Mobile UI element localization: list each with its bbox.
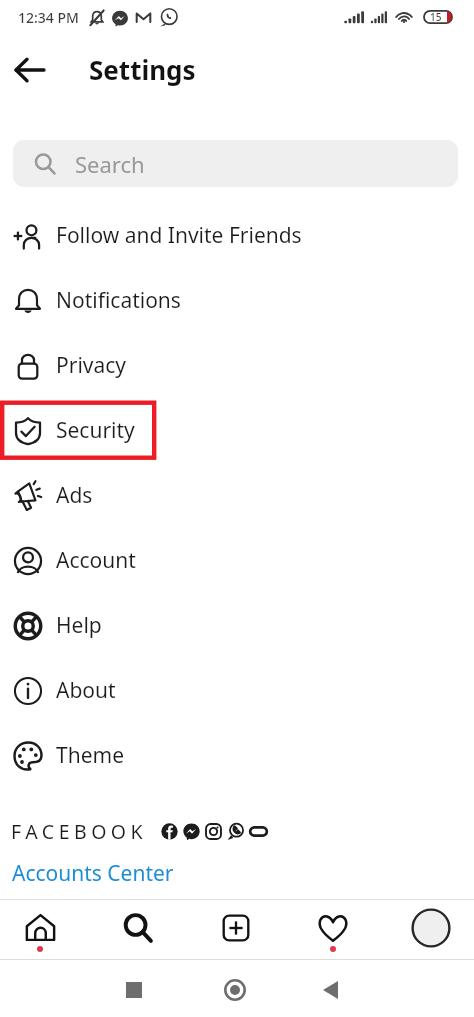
button[interactable]: Ads: [0, 463, 474, 528]
button[interactable]: Home: [203, 963, 267, 1017]
staticText: Theme: [56, 741, 124, 770]
button[interactable]: Account: [0, 528, 474, 593]
button[interactable]: Follow and Invite Friends: [0, 203, 474, 268]
staticText: Search: [75, 149, 145, 179]
button[interactable]: Help: [0, 593, 474, 658]
button[interactable]: Recents: [102, 963, 166, 1017]
button[interactable]: Back: [4, 44, 54, 94]
staticText: Help: [56, 611, 102, 640]
button[interactable]: Accounts Center: [0, 853, 474, 893]
staticText: Accounts Center: [12, 859, 174, 888]
staticText: Ads: [56, 481, 93, 510]
button[interactable]: Home: [11, 900, 69, 959]
button[interactable]: Notifications: [0, 268, 474, 333]
staticText: Follow and Invite Friends: [56, 221, 302, 250]
button[interactable]: Activity: [304, 900, 362, 959]
staticText: 15: [430, 10, 442, 24]
staticText: About: [56, 676, 116, 705]
staticText: Account: [56, 546, 136, 575]
button[interactable]: Privacy: [0, 333, 474, 398]
button[interactable]: Search: [109, 900, 167, 959]
button[interactable]: Back: [298, 963, 362, 1017]
button[interactable]: Security: [0, 398, 474, 463]
staticText: Security: [56, 416, 135, 445]
staticText: 12:34 PM: [18, 8, 79, 27]
staticText: FACEBOOK: [11, 818, 148, 845]
button[interactable]: Theme: [0, 723, 474, 788]
button[interactable]: Search: [13, 140, 458, 187]
button[interactable]: Profile: [402, 900, 460, 959]
button[interactable]: About: [0, 658, 474, 723]
staticText: Privacy: [56, 351, 127, 380]
button[interactable]: Create: [207, 900, 265, 959]
staticText: Notifications: [56, 286, 181, 315]
staticText: Settings: [89, 52, 196, 87]
